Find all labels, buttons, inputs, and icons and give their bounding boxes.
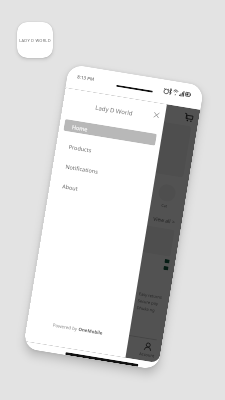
button[interactable]: Cart: [183, 112, 194, 122]
staticText: Dhuka ng: [136, 305, 156, 313]
button[interactable]: Products: [60, 139, 154, 165]
staticText: Products: [68, 143, 92, 153]
staticText: Easy returns: [138, 291, 163, 300]
button[interactable]: LADY D WORLD: [17, 22, 53, 58]
button[interactable]: Account: [133, 337, 162, 361]
button[interactable]: [24, 87, 200, 363]
staticText: 8:13 PM: [77, 73, 94, 82]
staticText: About: [62, 182, 79, 192]
staticText: LADY D WORLD: [19, 38, 51, 43]
button[interactable]: Close: [150, 109, 163, 121]
button[interactable]: Search: [106, 333, 136, 357]
staticText: Powered by: [52, 322, 79, 332]
staticText: OneMobile: [78, 326, 104, 336]
button[interactable]: Saved: [79, 328, 109, 353]
staticText: Cat: [161, 203, 168, 208]
button[interactable]: Home: [24, 319, 55, 344]
staticText: Search: [113, 347, 127, 354]
staticText: Cat: [65, 187, 72, 193]
staticText: Home: [71, 123, 88, 133]
staticText: View all >: [153, 215, 175, 226]
staticText: Lady D World: [95, 104, 134, 118]
staticText: Notifications: [65, 163, 99, 175]
button[interactable]: Home: [63, 119, 157, 146]
staticText: Account: [139, 351, 155, 358]
button[interactable]: About: [54, 178, 147, 205]
staticText: Secure pay: [137, 298, 159, 306]
button[interactable]: Shop: [52, 324, 83, 348]
button[interactable]: Notifications: [57, 158, 150, 185]
